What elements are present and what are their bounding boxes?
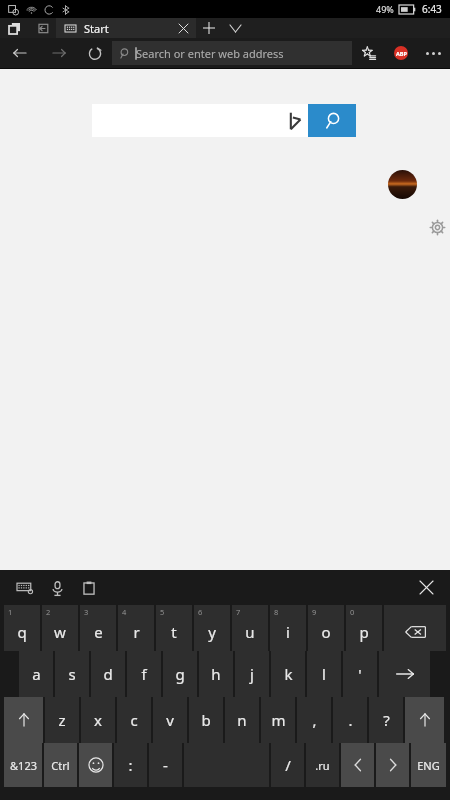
button[interactable]: 1 [4, 605, 40, 651]
staticText: a [32, 664, 41, 684]
button[interactable]: Backspace [384, 605, 446, 651]
staticText: ABP [396, 50, 407, 57]
staticText: z [58, 710, 66, 730]
button[interactable]: &123 [4, 743, 42, 787]
staticText: 3 [84, 607, 89, 617]
button[interactable] [92, 104, 308, 137]
button[interactable]: ' [343, 651, 377, 697]
button[interactable]: New tab [196, 18, 222, 38]
button[interactable]: Ctrl [44, 743, 77, 787]
button[interactable]: Tabs [0, 18, 28, 38]
staticText: b [201, 710, 211, 730]
button[interactable]: Profile [388, 170, 417, 199]
staticText: ' [358, 664, 362, 684]
staticText: y [208, 622, 216, 642]
button[interactable]: ? [369, 697, 403, 743]
staticText: / [285, 755, 291, 775]
button[interactable]: a [19, 651, 53, 697]
button[interactable]: k [271, 651, 305, 697]
staticText: 2 [46, 607, 51, 617]
staticText: ENG [417, 758, 440, 773]
button[interactable]: Shift [405, 697, 444, 743]
button[interactable]: Clipboard [76, 575, 102, 601]
button[interactable]: Cursor left [341, 743, 374, 787]
button[interactable]: Favorites [352, 38, 386, 68]
button[interactable]: j [235, 651, 269, 697]
staticText: : [128, 755, 133, 775]
staticText: k [284, 664, 293, 684]
button[interactable]: d [91, 651, 125, 697]
button[interactable]: - [149, 743, 182, 787]
button[interactable]: Voice input [44, 575, 70, 601]
staticText: - [163, 755, 168, 775]
button[interactable]: 6 [194, 605, 230, 651]
staticText: v [166, 710, 174, 730]
staticText: c [130, 710, 138, 730]
staticText: m [271, 710, 286, 730]
staticText: Start [84, 21, 109, 36]
button[interactable]: Forward [40, 38, 78, 68]
button[interactable]: 5 [156, 605, 192, 651]
staticText: 6 [198, 607, 203, 617]
staticText: 5 [160, 607, 165, 617]
staticText: j [250, 664, 254, 684]
button[interactable]: Cursor right [376, 743, 409, 787]
button[interactable]: Shift [4, 697, 43, 743]
button[interactable]: n [225, 697, 259, 743]
button[interactable]: Emoji [79, 743, 112, 787]
staticText: 9 [312, 607, 317, 617]
staticText: . [348, 710, 353, 730]
staticText: 49% [376, 3, 394, 15]
button[interactable]: Enter [379, 651, 430, 697]
button[interactable]: c [117, 697, 151, 743]
button[interactable]: z [45, 697, 79, 743]
button[interactable]: Start [56, 18, 196, 38]
button[interactable]: Search [308, 104, 356, 137]
staticText: 0 [350, 607, 355, 617]
staticText: 8 [274, 607, 279, 617]
button[interactable]: b [189, 697, 223, 743]
button[interactable]: , [297, 697, 331, 743]
button[interactable]: : [114, 743, 147, 787]
staticText: 6:43 [422, 2, 442, 16]
button[interactable]: 7 [232, 605, 268, 651]
button[interactable]: 0 [346, 605, 382, 651]
staticText: h [211, 664, 221, 684]
button[interactable]: h [199, 651, 233, 697]
button[interactable]: Back [0, 38, 40, 68]
button[interactable]: Search or enter web address [112, 41, 352, 65]
button[interactable]: 4 [118, 605, 154, 651]
staticText: x [94, 710, 102, 730]
button[interactable]: 2 [42, 605, 78, 651]
button[interactable]: ENG [411, 743, 446, 787]
button[interactable]: Close tab [172, 18, 194, 38]
button[interactable]: . [333, 697, 367, 743]
button[interactable]: / [271, 743, 304, 787]
staticText: l [322, 664, 326, 684]
button[interactable]: v [153, 697, 187, 743]
button[interactable]: Close keyboard [408, 570, 444, 605]
button[interactable]: g [163, 651, 197, 697]
button[interactable]: Refresh [78, 38, 112, 68]
button[interactable]: Adblock [386, 38, 416, 68]
staticText: i [286, 622, 290, 642]
staticText: Search or enter web address [136, 46, 284, 61]
button[interactable]: m [261, 697, 295, 743]
button[interactable]: f [127, 651, 161, 697]
staticText: g [175, 664, 185, 684]
button[interactable]: Collapse [28, 18, 56, 38]
button[interactable]: x [81, 697, 115, 743]
button[interactable]: 8 [270, 605, 306, 651]
staticText: 1 [8, 607, 13, 617]
button[interactable]: s [55, 651, 89, 697]
button[interactable]: Settings [426, 216, 448, 238]
staticText: n [237, 710, 247, 730]
button[interactable]: Keyboard settings [12, 575, 38, 601]
button[interactable]: 3 [80, 605, 116, 651]
button[interactable]: Tab options [222, 18, 248, 38]
button[interactable]: More options [416, 38, 450, 68]
button[interactable]: 9 [308, 605, 344, 651]
button[interactable]: .ru [306, 743, 339, 787]
button[interactable]: l [307, 651, 341, 697]
